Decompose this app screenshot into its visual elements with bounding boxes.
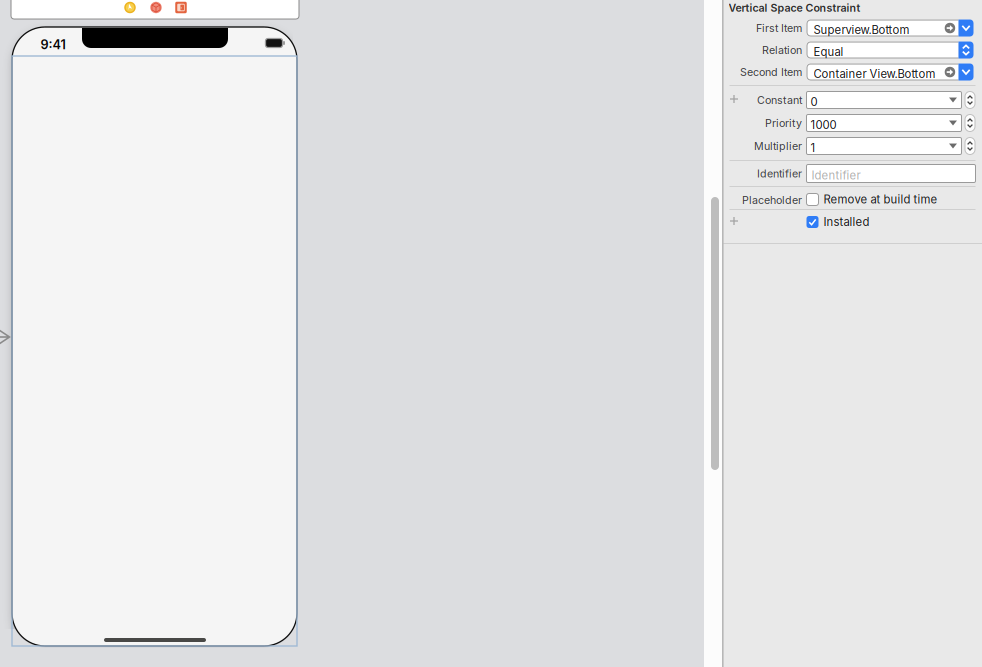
staticText: Identifier	[757, 167, 802, 180]
button[interactable]: Installed	[806, 215, 869, 229]
staticText: Priority	[765, 116, 802, 129]
staticText: 0	[810, 95, 817, 109]
staticText: 9:41	[40, 37, 65, 52]
staticText: Second Item	[740, 65, 802, 78]
staticText: Installed	[823, 215, 869, 229]
button[interactable]: View Controller	[124, 1, 136, 13]
staticText: Vertical Space Constraint	[728, 1, 860, 14]
staticText: Superview.Bottom	[813, 23, 909, 37]
button[interactable]: Stepper	[965, 137, 975, 154]
button[interactable]: Choose first item	[958, 19, 973, 36]
button[interactable]: First Responder	[150, 1, 162, 13]
staticText: Remove at build time	[823, 193, 937, 206]
staticText: Container View.Bottom	[813, 67, 935, 81]
staticText: Multiplier	[754, 139, 802, 152]
button[interactable]: Exit	[175, 1, 187, 13]
staticText: Constant	[757, 93, 802, 106]
staticText: Relation	[762, 43, 802, 56]
staticText: First Item	[756, 21, 802, 34]
staticText: Placeholder	[742, 193, 802, 206]
staticText: 1000	[810, 118, 836, 132]
button[interactable]: Choose second item	[958, 63, 973, 80]
staticText: 1	[810, 141, 815, 155]
staticText: Equal	[813, 45, 843, 59]
staticText: Identifier	[811, 168, 860, 182]
button[interactable]: Choose relation	[958, 41, 973, 58]
button[interactable]: Remove at build time	[806, 192, 937, 206]
button[interactable]: Stepper	[965, 114, 975, 131]
button[interactable]: Stepper	[965, 91, 975, 108]
